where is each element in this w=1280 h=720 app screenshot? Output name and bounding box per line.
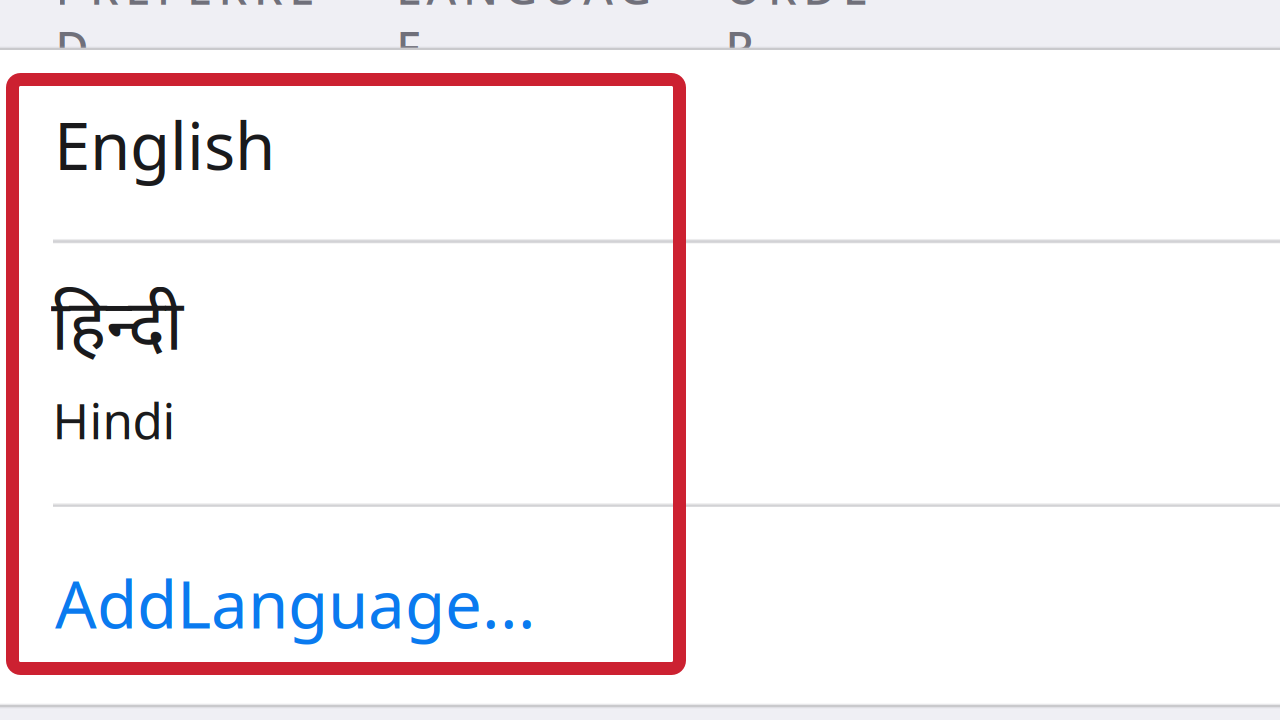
button[interactable]: Add (0, 507, 1280, 706)
staticText: LANGUAGE (396, 0, 683, 17)
staticText: ORDER (725, 0, 903, 17)
button[interactable]: English (0, 50, 1280, 241)
staticText: English (54, 101, 275, 188)
button[interactable]: हिन्दी (0, 243, 1280, 506)
staticText: हिन्दी (51, 287, 183, 378)
staticText: Language... (177, 560, 536, 647)
staticText: Hindi (53, 387, 176, 453)
staticText: PREFERRED (55, 0, 354, 17)
staticText: Add (55, 560, 177, 647)
